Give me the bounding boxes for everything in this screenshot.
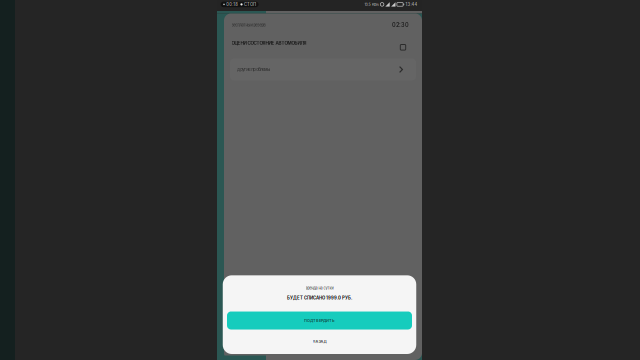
staticText: НАЗАД bbox=[312, 339, 326, 344]
staticText: 00:18 bbox=[226, 2, 238, 7]
staticText: ОЦЕНИ СОСТОЯНИЕ АВТОМОБИЛЯ bbox=[232, 40, 307, 46]
staticText: ПОДТВЕРДИТЬ bbox=[304, 318, 335, 323]
staticText: другие проблемы bbox=[237, 67, 270, 72]
staticText: 02:30 bbox=[392, 22, 409, 28]
staticText: аренда на сутки bbox=[305, 286, 333, 290]
button[interactable]: ПОДТВЕРДИТЬ bbox=[227, 311, 412, 329]
button[interactable]: НАЗАД bbox=[227, 334, 412, 348]
button[interactable]: другие проблемы bbox=[230, 58, 416, 80]
button[interactable]: Chat with support bbox=[397, 36, 408, 50]
staticText: 13.5 bbox=[364, 2, 370, 7]
staticText: 13:44 bbox=[406, 2, 418, 7]
staticText: СТОП bbox=[244, 2, 256, 7]
staticText: KB/s bbox=[372, 2, 379, 7]
staticText: БУДЕТ СПИСАНО 1999.0 РУБ. bbox=[287, 295, 352, 300]
staticText: бесплатный резерв bbox=[232, 23, 266, 27]
